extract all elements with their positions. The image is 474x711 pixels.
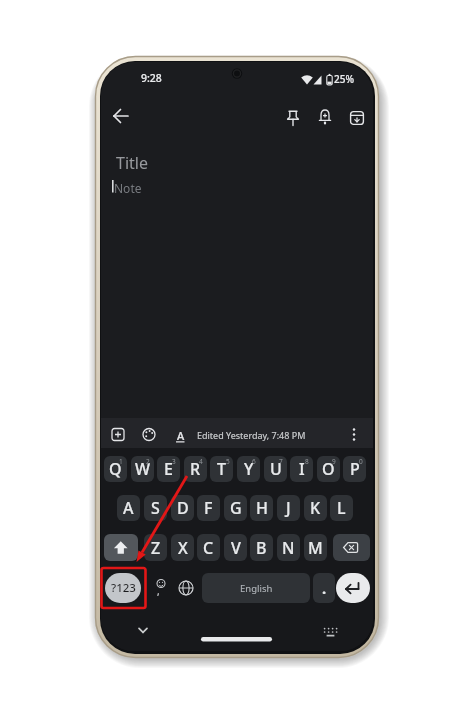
staticText: Y <box>244 458 254 480</box>
staticText: E <box>164 458 173 480</box>
staticText: Note <box>114 180 142 196</box>
staticText: 1 <box>119 457 123 466</box>
button[interactable]: O <box>317 456 340 482</box>
staticText: R <box>190 458 201 480</box>
staticText: J <box>286 497 291 519</box>
button[interactable] <box>108 424 128 444</box>
staticText: I <box>299 458 305 480</box>
staticText: 5 <box>226 457 230 466</box>
button[interactable]: N <box>277 534 300 561</box>
button[interactable]: H <box>250 495 273 521</box>
button[interactable] <box>344 424 364 444</box>
button[interactable]: C <box>197 534 220 561</box>
staticText: 6 <box>252 457 256 466</box>
staticText: Title <box>116 152 148 174</box>
button[interactable] <box>104 534 138 561</box>
staticText: 9:28 <box>141 71 162 85</box>
staticText: O <box>322 458 335 480</box>
button[interactable] <box>175 573 198 603</box>
button[interactable]: A <box>117 495 140 521</box>
button[interactable]: G <box>224 495 247 521</box>
button[interactable]: F <box>197 495 220 521</box>
staticText: P <box>350 458 360 480</box>
staticText: K <box>310 497 321 519</box>
button[interactable] <box>336 573 370 603</box>
button[interactable] <box>139 424 159 444</box>
staticText: Z <box>151 537 161 559</box>
button[interactable] <box>333 534 370 561</box>
staticText: 4 <box>199 457 203 466</box>
button[interactable]: ?123 <box>105 573 141 603</box>
button[interactable] <box>152 573 170 603</box>
button[interactable]: R <box>184 456 207 482</box>
button[interactable]: P <box>343 456 366 482</box>
staticText: L <box>337 497 346 519</box>
staticText: T <box>217 458 226 480</box>
staticText: G <box>230 497 242 519</box>
button[interactable]: . <box>313 573 335 603</box>
button[interactable]: E <box>157 456 180 482</box>
staticText: , <box>157 584 160 598</box>
button[interactable]: S <box>144 495 167 521</box>
button[interactable]: W <box>131 456 154 482</box>
staticText: M <box>308 537 323 559</box>
staticText: 7 <box>279 457 283 466</box>
staticText: Q <box>109 458 122 480</box>
button[interactable]: D <box>171 495 194 521</box>
button[interactable] <box>133 620 153 640</box>
button[interactable]: X <box>171 534 194 561</box>
staticText: ?123 <box>111 580 136 596</box>
staticText: F <box>204 497 213 519</box>
staticText: 25% <box>334 72 354 86</box>
button[interactable]: English <box>202 573 310 603</box>
staticText: V <box>231 537 241 559</box>
staticText: 0 <box>359 457 363 466</box>
staticText: C <box>203 537 214 559</box>
staticText: A <box>123 497 134 519</box>
button[interactable]: Q <box>104 456 127 482</box>
staticText: 8 <box>305 457 309 466</box>
staticText: A <box>177 428 185 443</box>
staticText: W <box>135 458 151 480</box>
staticText: U <box>270 458 282 480</box>
staticText: English <box>240 582 273 595</box>
button[interactable]: Y <box>237 456 260 482</box>
button[interactable]: Z <box>144 534 167 561</box>
button[interactable]: K <box>304 495 327 521</box>
button[interactable]: I <box>290 456 313 482</box>
staticText: 9 <box>332 457 336 466</box>
button[interactable]: T <box>210 456 233 482</box>
staticText: N <box>282 537 295 559</box>
staticText: S <box>151 497 160 519</box>
button[interactable] <box>283 108 303 128</box>
button[interactable] <box>111 106 131 126</box>
button[interactable]: J <box>277 495 300 521</box>
staticText: B <box>256 537 267 559</box>
staticText: Edited Yesterday, 7:48 PM <box>197 429 306 441</box>
button[interactable] <box>315 108 335 128</box>
button[interactable] <box>347 108 367 128</box>
button[interactable]: M <box>304 534 327 561</box>
staticText: 3 <box>172 457 176 466</box>
staticText: 2 <box>146 457 150 466</box>
staticText: H <box>256 497 268 519</box>
button[interactable]: V <box>224 534 247 561</box>
staticText: X <box>178 537 188 559</box>
staticText: D <box>177 497 189 519</box>
button[interactable]: B <box>250 534 273 561</box>
staticText: . <box>322 578 327 598</box>
button[interactable]: U <box>264 456 287 482</box>
button[interactable]: L <box>330 495 353 521</box>
button[interactable] <box>320 622 341 642</box>
button[interactable] <box>170 424 190 444</box>
